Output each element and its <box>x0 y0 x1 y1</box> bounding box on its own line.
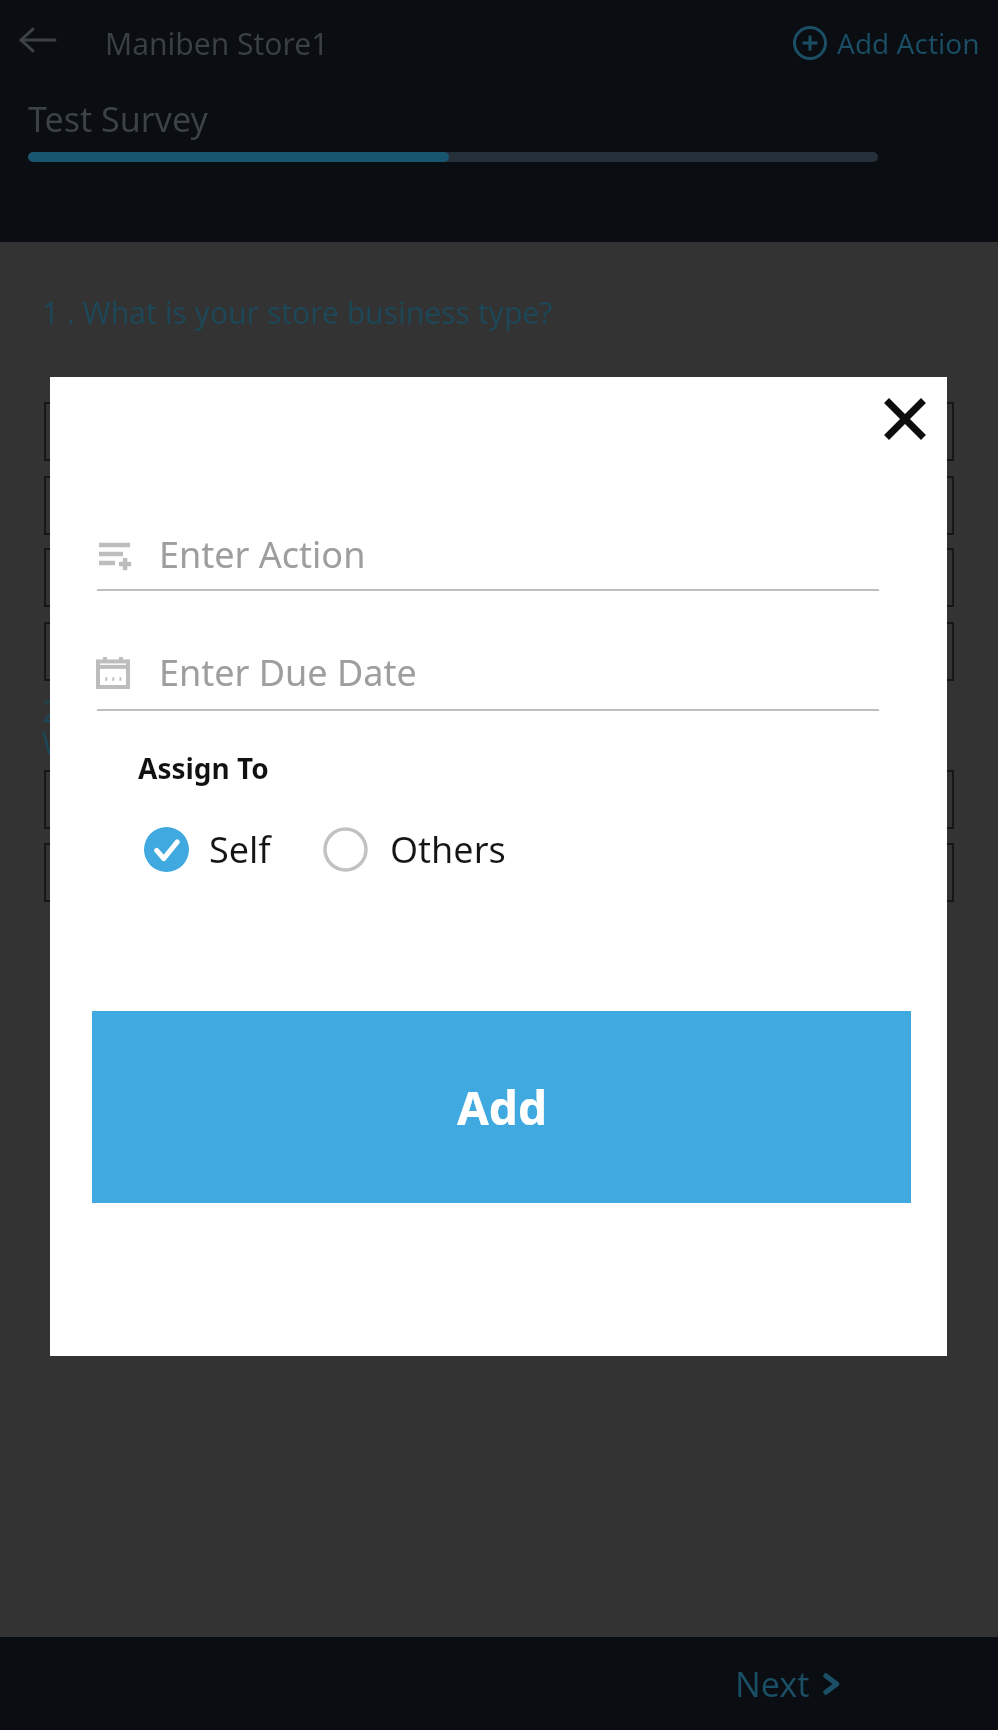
button[interactable] <box>44 402 954 461</box>
staticText: Add <box>457 1076 547 1139</box>
staticText: Maniben Store1 <box>105 23 329 64</box>
staticText: 1 . What is your store business type? <box>42 292 553 333</box>
button[interactable]: Add Action <box>793 24 980 62</box>
staticText: Others <box>390 825 506 874</box>
staticText: Add Action <box>837 24 980 62</box>
staticText: 2 . <box>42 690 75 731</box>
button[interactable]: Add <box>92 1011 911 1203</box>
button[interactable]: Self <box>144 825 271 874</box>
button[interactable]: Enter Due Date <box>97 635 879 709</box>
button[interactable]: Close <box>873 387 937 451</box>
button[interactable] <box>44 622 954 681</box>
staticText: Next <box>735 1661 810 1707</box>
button[interactable]: Enter Action <box>97 517 879 591</box>
staticText: Self <box>209 825 271 874</box>
button[interactable]: Next <box>735 1661 844 1707</box>
staticText: Assign To <box>138 749 269 787</box>
button[interactable]: Back <box>8 10 68 70</box>
button[interactable] <box>44 843 954 902</box>
staticText: Enter Due Date <box>159 648 417 697</box>
button[interactable] <box>44 548 954 607</box>
staticText: Enter Action <box>159 530 366 579</box>
button[interactable] <box>44 770 954 829</box>
button[interactable]: Others <box>323 825 506 874</box>
button[interactable] <box>44 476 954 535</box>
staticText: W <box>42 722 70 763</box>
staticText: Test Survey <box>28 96 208 142</box>
